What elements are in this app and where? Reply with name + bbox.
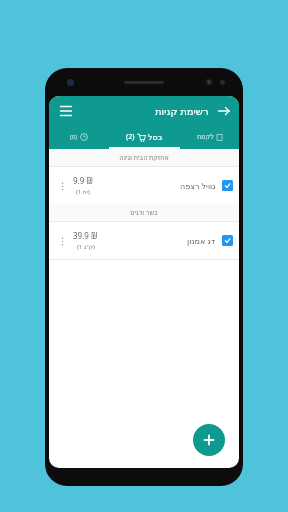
button[interactable]: לקנות xyxy=(180,126,239,147)
button[interactable]: More options xyxy=(49,167,239,204)
staticText: בשר ודגים xyxy=(130,208,158,217)
button[interactable]: Checked xyxy=(222,180,233,191)
staticText: אחזקת הבית וגינה xyxy=(119,153,169,162)
staticText: (1 ק"ג) xyxy=(77,243,95,251)
staticText: רשימת קניות xyxy=(155,104,209,118)
staticText: (0) xyxy=(70,133,78,141)
button[interactable]: Menu xyxy=(55,100,77,122)
staticText: בסל xyxy=(148,133,163,142)
button[interactable]: More options xyxy=(55,179,69,193)
button[interactable]: (2) xyxy=(109,126,180,147)
button[interactable]: Add item xyxy=(193,424,225,456)
staticText: לקנות xyxy=(197,133,214,141)
staticText: דג אמנון xyxy=(187,235,216,246)
button[interactable]: (0) xyxy=(49,126,109,147)
button[interactable]: Forward xyxy=(214,101,234,121)
staticText: 9.9 ₪ xyxy=(73,175,93,186)
button[interactable]: More options xyxy=(55,234,69,248)
button[interactable]: More options xyxy=(49,222,239,259)
button[interactable]: Checked xyxy=(222,235,233,246)
staticText: 39.9 ₪ xyxy=(73,230,98,241)
staticText: (1 יח) xyxy=(76,188,90,196)
staticText: גוויל רצפה xyxy=(180,180,216,191)
staticText: (2) xyxy=(126,132,135,142)
